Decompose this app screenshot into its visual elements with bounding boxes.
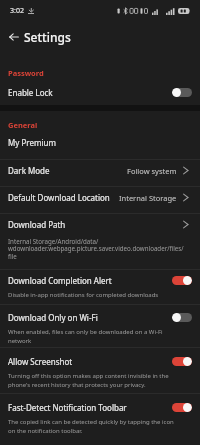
staticText: Download Only on Wi-Fi [8,312,98,323]
staticText: Turning off this option makes app conten… [8,372,180,389]
button[interactable]: Allow Screenshot [0,348,200,394]
staticText: Password [8,68,44,78]
button[interactable]: Default Download Location [0,187,200,214]
staticText: Internal Storage/Android/data/wdownloade… [8,237,184,261]
staticText: Download Completion Alert [8,275,112,286]
button[interactable]: Download Only on Wi-Fi [0,305,200,348]
staticText: Disable in-app notifications for complet… [8,291,159,299]
staticText: Download Path [8,219,66,230]
staticText: Internal Storage [119,193,177,203]
button[interactable]: Enable Lock [0,80,200,105]
staticText: When enabled, files can only be download… [8,328,180,345]
staticText: Enable Lock [8,87,53,98]
button[interactable]: Fast-Detect Notification Toolbar [0,394,200,445]
staticText: Follow system [127,166,177,176]
staticText: Dark Mode [8,165,50,176]
button[interactable]: Toggle [172,313,192,322]
button[interactable]: Toggle [172,276,192,285]
button[interactable]: Download Path [0,214,200,270]
staticText: Default Download Location [8,192,110,203]
staticText: The copied link can be detected quickly … [8,418,180,435]
button[interactable]: Toggle [172,357,192,366]
staticText: Fast-Detect Notification Toolbar [8,402,127,413]
staticText: My Premium [8,137,56,148]
button[interactable]: Toggle [172,403,192,412]
staticText: Allow Screenshot [8,356,73,367]
button[interactable]: My Premium [0,132,200,160]
button[interactable]: Toggle [172,88,192,97]
button[interactable]: Back [0,20,28,54]
staticText: Settings [24,29,71,45]
button[interactable]: Download Completion Alert [0,270,200,305]
staticText: General [8,120,38,130]
staticText: 3:02 [10,6,24,16]
button[interactable]: Dark Mode [0,160,200,187]
